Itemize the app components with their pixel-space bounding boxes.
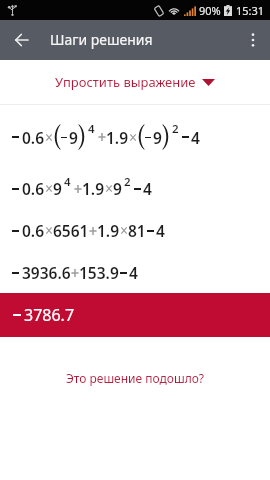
button[interactable]: 3786.7 xyxy=(0,293,270,337)
button[interactable]: Back xyxy=(0,20,42,60)
staticText: Упростить выражение xyxy=(55,73,196,91)
staticText: 2 xyxy=(172,121,179,137)
staticText: 9 xyxy=(53,178,62,199)
staticText: Шаги решения xyxy=(50,30,153,49)
staticText: 4 xyxy=(64,174,71,190)
staticText: 4 xyxy=(156,220,165,241)
staticText: 81 xyxy=(128,220,146,241)
staticText: 3786.7 xyxy=(24,304,75,326)
staticText: 153.9 xyxy=(79,262,119,283)
staticText: 4 xyxy=(88,121,95,137)
button[interactable]: 0.6 xyxy=(0,209,270,251)
staticText: 0.6 xyxy=(22,220,45,241)
staticText: 4 xyxy=(191,127,200,148)
staticText: 4 xyxy=(129,262,138,283)
staticText: 0.6 xyxy=(22,178,45,199)
staticText: 90% xyxy=(199,3,221,18)
button[interactable]: Это решение подошло? xyxy=(60,368,211,388)
staticText: 1.9 xyxy=(82,178,105,199)
staticText: 1.9 xyxy=(106,127,129,148)
staticText: 3936.6 xyxy=(22,262,71,283)
button[interactable]: Упростить выражение xyxy=(0,60,270,104)
button[interactable]: More options xyxy=(236,20,270,60)
staticText: 1.9 xyxy=(97,220,120,241)
button[interactable]: 0.6 xyxy=(0,168,270,209)
staticText: 9 xyxy=(69,127,78,148)
staticText: 6561 xyxy=(53,220,89,241)
staticText: 0.6 xyxy=(22,127,45,148)
staticText: 4 xyxy=(143,178,152,199)
staticText: 9 xyxy=(113,178,122,199)
staticText: 15:31 xyxy=(236,3,265,18)
staticText: 9 xyxy=(153,127,162,148)
button[interactable]: 3936.6 xyxy=(0,251,270,293)
button[interactable]: 0.6 xyxy=(0,105,270,168)
staticText: 2 xyxy=(124,174,131,190)
